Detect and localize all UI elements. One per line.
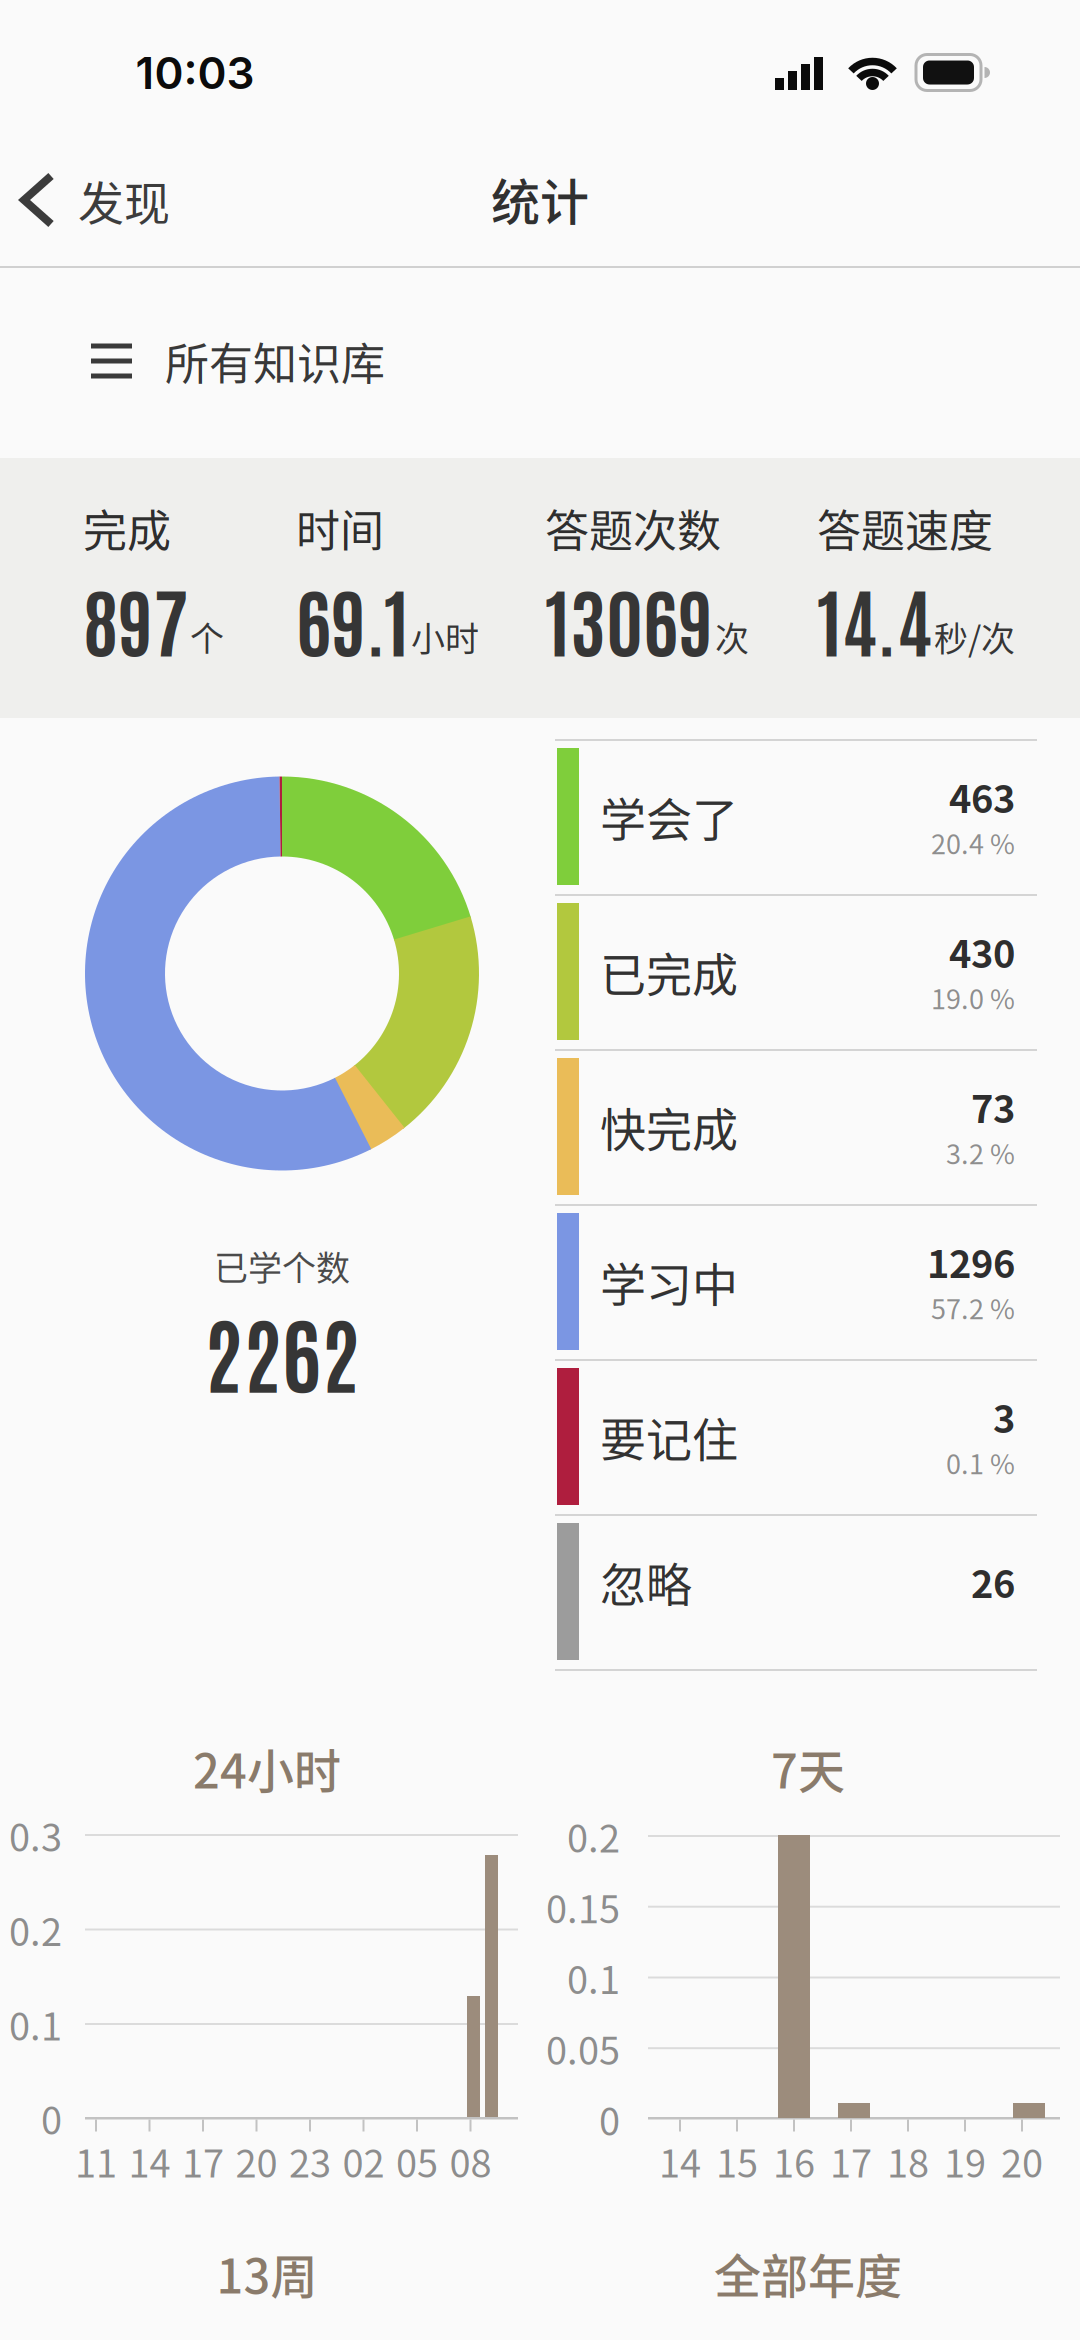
staticText: 所有知识库 [165, 329, 385, 393]
staticText: 02 [342, 2133, 384, 2188]
staticText: 17 [182, 2133, 224, 2188]
staticText: 19 [944, 2133, 986, 2188]
staticText: 学会了 [600, 783, 738, 850]
staticText: 已学个数 [214, 1241, 350, 1291]
staticText: 20 [235, 2133, 277, 2188]
staticText: 0.2 [9, 1902, 62, 1957]
staticText: 08 [449, 2133, 491, 2188]
staticText: 2262 [204, 1296, 360, 1404]
staticText: 0 [41, 2090, 62, 2145]
staticText: 10:03 [135, 46, 254, 100]
staticText: 17 [830, 2133, 872, 2188]
staticText: 次 [715, 612, 749, 661]
staticText: 57.2 % [931, 1288, 1015, 1327]
staticText: 忽略 [600, 1548, 692, 1615]
staticText: 73 [971, 1079, 1015, 1134]
staticText: 答题次数 [545, 496, 721, 560]
staticText: 15 [716, 2133, 758, 2188]
staticText: 秒/次 [934, 612, 1015, 661]
staticText: 13周 [216, 2239, 317, 2307]
staticText: 463 [949, 769, 1015, 824]
staticText: 统计 [491, 163, 589, 234]
staticText: 全部年度 [714, 2239, 902, 2307]
staticText: 897 [83, 569, 188, 667]
staticText: 要记住 [600, 1403, 738, 1470]
staticText: 0.15 [546, 1879, 620, 1934]
staticText: 快完成 [600, 1093, 738, 1160]
staticText: 0 [599, 2091, 620, 2146]
staticText: 05 [396, 2133, 438, 2188]
staticText: 20 [1001, 2133, 1043, 2188]
staticText: 23 [289, 2133, 331, 2188]
staticText: 学习中 [600, 1248, 738, 1315]
staticText: 24小时 [193, 1734, 341, 1802]
staticText: 小时 [411, 612, 479, 661]
staticText: 16 [773, 2133, 815, 2188]
staticText: 20.4 % [931, 823, 1015, 862]
staticText: 0.3 [9, 1807, 62, 1862]
staticText: 发现 [78, 167, 170, 233]
staticText: 0.1 [9, 1996, 62, 2051]
staticText: 0.1 [567, 1950, 620, 2005]
staticText: 11 [75, 2133, 117, 2188]
button[interactable]: 发现 [20, 150, 260, 250]
button[interactable]: 所有知识库 [91, 306, 611, 416]
staticText: 14 [659, 2133, 701, 2188]
staticText: 3.2 % [946, 1133, 1015, 1172]
staticText: 0.1 % [946, 1443, 1015, 1482]
staticText: 完成 [83, 496, 171, 560]
staticText: 14 [128, 2133, 170, 2188]
staticText: 0.05 [546, 2021, 620, 2076]
staticText: 430 [949, 924, 1015, 979]
staticText: 答题速度 [817, 496, 993, 560]
staticText: 个 [190, 612, 224, 661]
staticText: 13069 [545, 569, 713, 667]
staticText: 3 [993, 1389, 1015, 1444]
staticText: 已完成 [600, 938, 738, 1005]
staticText: 19.0 % [931, 978, 1015, 1017]
staticText: 18 [887, 2133, 929, 2188]
staticText: 26 [971, 1554, 1015, 1609]
staticText: 0.2 [567, 1808, 620, 1863]
staticText: 14.4 [817, 569, 932, 667]
staticText: 7天 [771, 1734, 845, 1802]
staticText: 69.1 [296, 569, 409, 667]
staticText: 时间 [296, 496, 384, 560]
staticText: 1296 [927, 1234, 1015, 1289]
